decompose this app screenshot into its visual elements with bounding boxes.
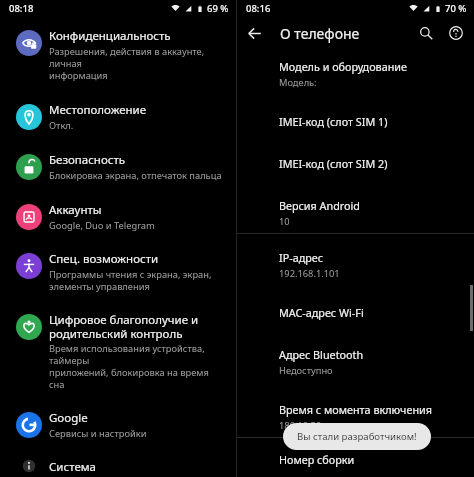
- staticText: Адрес Bluetooth: [279, 347, 364, 362]
- staticText: 70 %: [445, 2, 467, 15]
- button[interactable]: Безопасность: [0, 138, 236, 188]
- staticText: Откл.: [49, 119, 74, 132]
- button[interactable]: Цифровое благополучие и родительский кон…: [0, 299, 236, 397]
- button[interactable]: Модель и оборудование: [237, 59, 474, 94]
- staticText: Цифровое благополучие и родительский кон…: [49, 312, 199, 341]
- button[interactable]: Справка: [441, 18, 471, 48]
- staticText: IMEI-код (слот SIM 1): [279, 114, 388, 129]
- staticText: 10: [279, 215, 290, 228]
- staticText: Время с момента включения: [279, 402, 432, 417]
- staticText: 08:16: [246, 2, 271, 15]
- staticText: Безопасность: [49, 152, 126, 168]
- staticText: Местоположение: [49, 102, 147, 118]
- button[interactable]: Номер сборки: [237, 438, 474, 477]
- staticText: Аккаунты: [49, 202, 102, 218]
- staticText: Google, Duo и Telegram: [49, 219, 155, 232]
- button[interactable]: Местоположение: [0, 88, 236, 138]
- staticText: MAC-адрес Wi-Fi: [279, 305, 364, 320]
- button[interactable]: Время с момента включения: [237, 382, 474, 437]
- staticText: Google: [49, 410, 88, 426]
- button[interactable]: Спец. возможности: [0, 238, 236, 299]
- button[interactable]: Адрес Bluetooth: [237, 325, 474, 382]
- button[interactable]: Назад: [237, 17, 271, 49]
- staticText: 69 %: [207, 2, 229, 15]
- button[interactable]: IMEI-код (слот SIM 1): [237, 94, 474, 134]
- staticText: Сервисы и настройки: [49, 427, 147, 440]
- button[interactable]: Поиск: [411, 18, 441, 48]
- staticText: Вы стали разработчиком!: [297, 430, 417, 443]
- staticText: Время использования устройства, таймеры …: [49, 342, 226, 391]
- staticText: О телефоне: [280, 24, 360, 43]
- staticText: Модель:: [279, 76, 317, 89]
- button[interactable]: Система: [0, 446, 236, 477]
- button[interactable]: Аккаунты: [0, 188, 236, 238]
- staticText: Версия Android: [279, 198, 361, 213]
- button[interactable]: IP-адрес: [237, 234, 474, 285]
- staticText: Спец. возможности: [49, 251, 159, 267]
- staticText: 08:18: [9, 2, 34, 15]
- staticText: Блокировка экрана, отпечаток пальца: [49, 169, 222, 182]
- staticText: Программы чтения с экрана, экран, элемен…: [49, 268, 212, 293]
- staticText: IP-адрес: [279, 250, 324, 265]
- staticText: Разрешения, действия в аккаунте, личная …: [49, 45, 226, 82]
- staticText: Недоступно: [279, 364, 333, 377]
- button[interactable]: IMEI-код (слот SIM 2): [237, 134, 474, 176]
- button[interactable]: Google: [0, 397, 236, 446]
- button[interactable]: Версия Android: [237, 176, 474, 233]
- staticText: Модель и оборудование: [279, 59, 407, 74]
- button[interactable]: Конфиденциальность: [0, 28, 236, 88]
- staticText: 192.168.1.101: [279, 267, 340, 280]
- button[interactable]: MAC-адрес Wi-Fi: [237, 285, 474, 325]
- staticText: Номер сборки: [279, 452, 355, 467]
- staticText: 180:10:50: [279, 419, 322, 432]
- staticText: Конфиденциальность: [49, 28, 171, 44]
- staticText: IMEI-код (слот SIM 2): [279, 156, 388, 171]
- staticText: Система: [49, 459, 96, 471]
